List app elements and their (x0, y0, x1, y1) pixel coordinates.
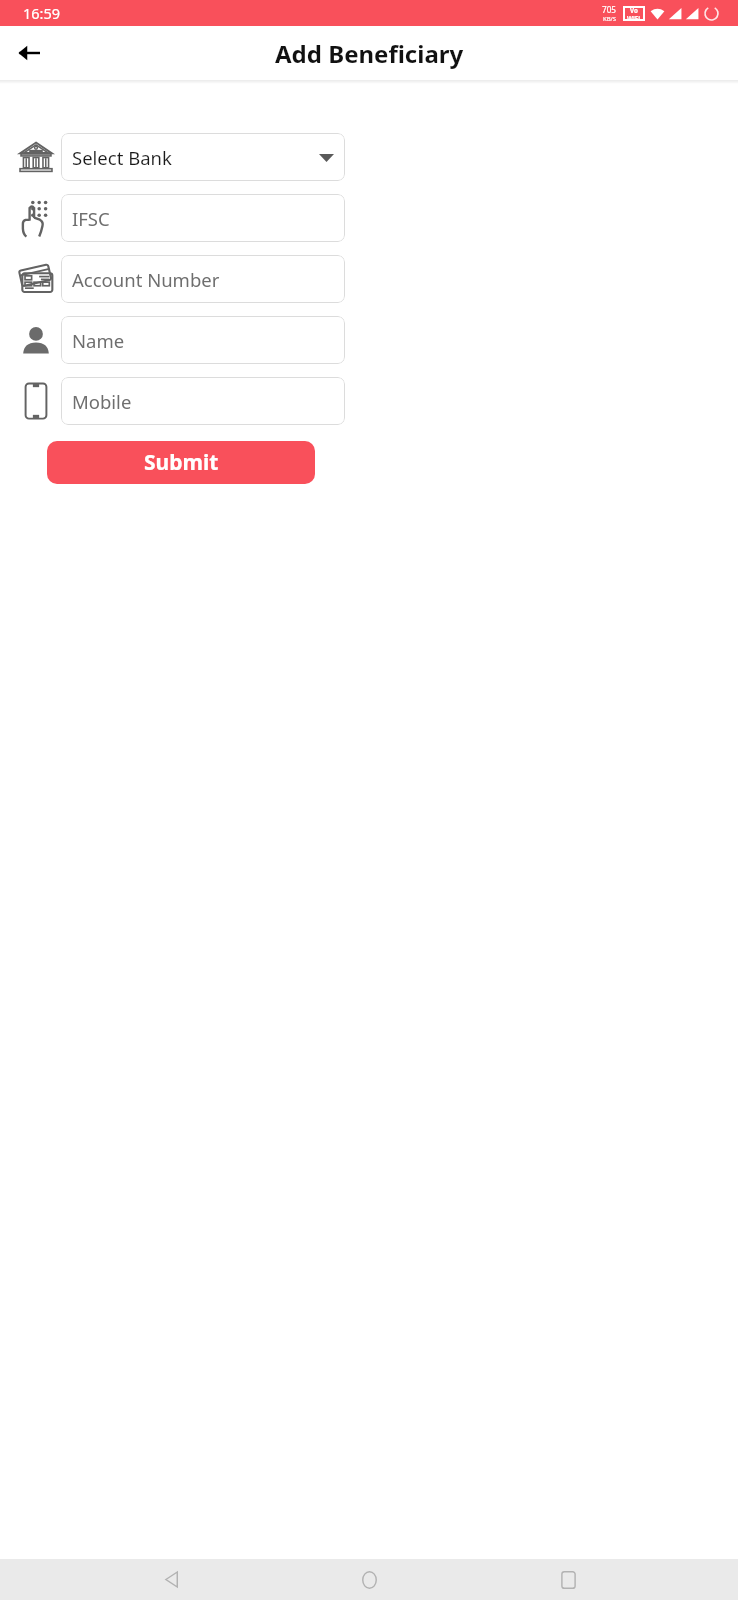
staticText: Name (72, 328, 334, 353)
button[interactable]: Mobile (61, 377, 345, 425)
button[interactable]: Submit (47, 441, 315, 484)
button[interactable]: Recent apps (540, 1559, 596, 1600)
button[interactable]: Account Number (61, 255, 345, 303)
staticText: Vo (630, 6, 638, 14)
staticText: 16:59 (23, 3, 61, 23)
button[interactable]: Back (143, 1559, 199, 1600)
button[interactable]: Back (11, 35, 47, 71)
staticText: WiFi (627, 14, 641, 21)
staticText: 705 (602, 4, 617, 15)
staticText: Account Number (72, 267, 334, 292)
button[interactable]: Home (341, 1559, 397, 1600)
staticText: IFSC (72, 206, 334, 231)
staticText: KB/S (603, 15, 617, 23)
button[interactable]: Select Bank (61, 133, 345, 181)
staticText: Add Beneficiary (275, 37, 464, 70)
staticText: Select Bank (72, 145, 319, 170)
button[interactable]: Name (61, 316, 345, 364)
staticText: Submit (144, 448, 219, 477)
staticText: Mobile (72, 389, 334, 414)
button[interactable]: IFSC (61, 194, 345, 242)
